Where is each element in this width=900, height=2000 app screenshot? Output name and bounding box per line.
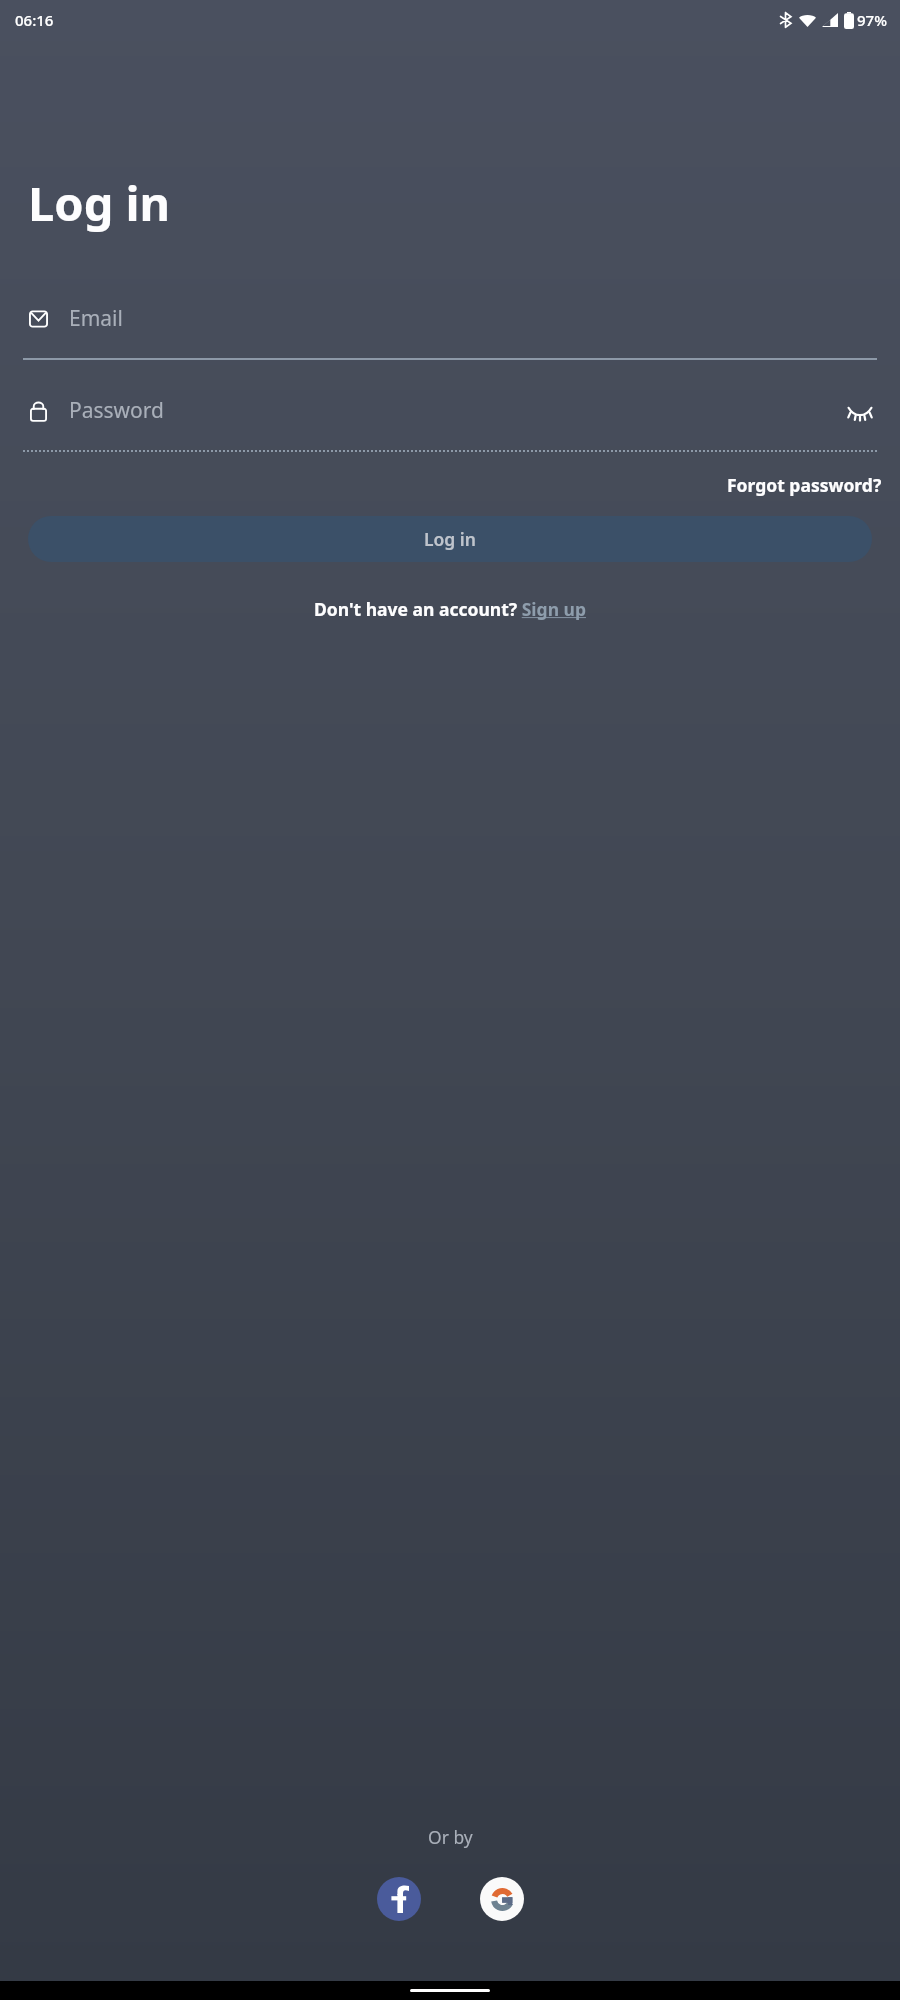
staticText: 97% xyxy=(857,10,887,30)
button[interactable]: Forgot password? xyxy=(724,470,885,500)
staticText: Log in xyxy=(28,171,171,235)
staticText: Forgot password? xyxy=(727,473,882,497)
staticText: 06:16 xyxy=(15,10,54,30)
button[interactable]: Show password xyxy=(843,394,877,428)
button[interactable]: Sign in with Google xyxy=(480,1877,524,1921)
staticText: Don't have an account? Sign up xyxy=(314,597,587,621)
staticText: Email xyxy=(69,304,877,333)
staticText: Or by xyxy=(428,1825,473,1849)
button[interactable]: Don't have an account? Sign up xyxy=(310,594,591,624)
button[interactable]: Sign in with Facebook xyxy=(377,1877,421,1921)
staticText: Log in xyxy=(424,527,476,551)
staticText: Password xyxy=(69,396,843,425)
button[interactable]: Email xyxy=(23,294,877,360)
button[interactable]: Password xyxy=(23,386,877,452)
button[interactable]: Log in xyxy=(28,516,872,562)
